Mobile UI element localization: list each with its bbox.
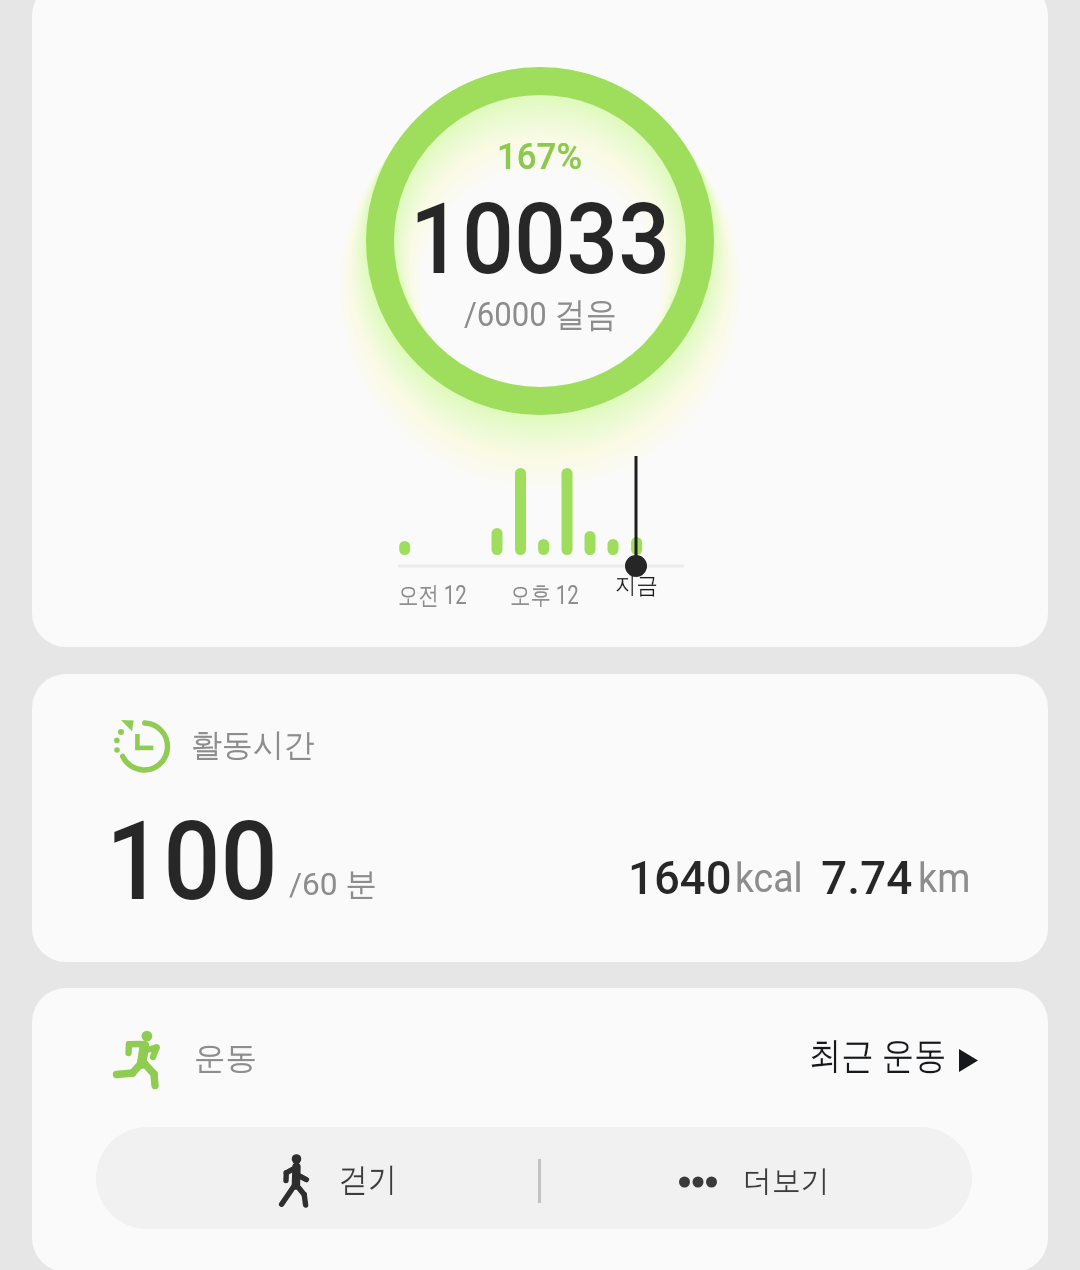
- button[interactable]: [32, 674, 1048, 962]
- staticText: 10033: [410, 181, 671, 297]
- other: Exercise: [113, 1031, 159, 1089]
- button[interactable]: [540, 1127, 972, 1229]
- staticText: kcal: [735, 854, 803, 902]
- staticText: /60 분: [289, 864, 378, 904]
- staticText: km: [918, 854, 971, 902]
- staticText: 운동: [194, 1038, 257, 1078]
- other: Active time: [107, 716, 169, 772]
- staticText: 최근 운동: [809, 1032, 947, 1079]
- staticText: 7.74: [821, 851, 913, 905]
- staticText: 활동시간: [191, 725, 315, 765]
- staticText: 1640: [628, 851, 732, 905]
- button[interactable]: [96, 1127, 540, 1229]
- staticText: 100: [106, 798, 278, 926]
- staticText: /6000 걸음: [464, 293, 617, 336]
- staticText: 지금: [615, 571, 658, 600]
- staticText: 걷기: [339, 1159, 397, 1201]
- staticText: 167%: [497, 135, 583, 178]
- button[interactable]: [32, 0, 1048, 647]
- staticText: 더보기: [743, 1162, 830, 1200]
- staticText: 오후 12: [510, 580, 579, 611]
- button[interactable]: [32, 988, 1048, 1270]
- button[interactable]: [800, 1028, 990, 1086]
- staticText: 오전 12: [398, 580, 467, 611]
